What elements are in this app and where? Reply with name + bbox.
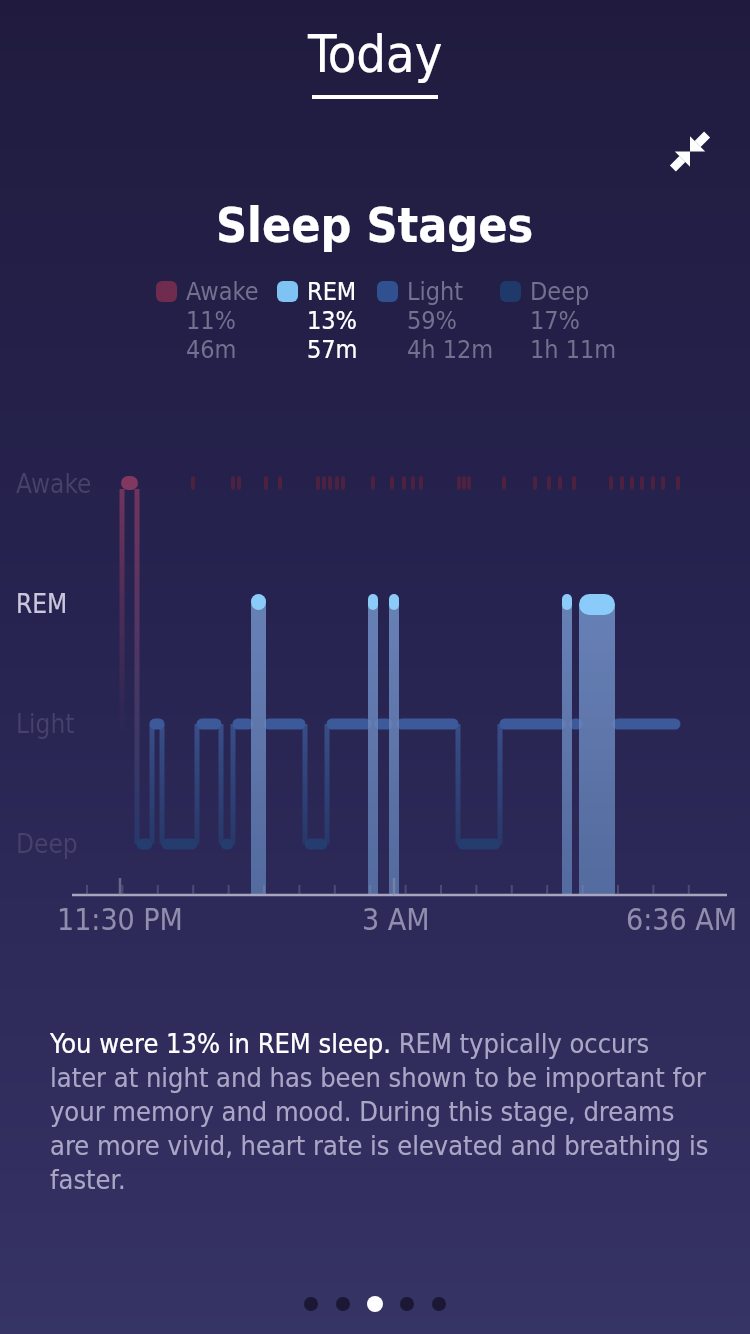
staticText: 4h 12m [407,335,494,364]
button[interactable] [295,1295,327,1313]
staticText: REM [307,277,357,306]
button[interactable] [327,1295,359,1313]
button[interactable]: Deep [500,277,617,364]
staticText: 13% [307,306,357,335]
staticText: You were 13% in REM sleep. REM typically… [50,1028,709,1195]
staticText: Deep [530,277,590,306]
staticText: 57m [307,335,358,364]
staticText: Light [16,709,75,739]
button[interactable] [359,1295,391,1313]
staticText: 11% [186,306,236,335]
button[interactable] [423,1295,455,1313]
button[interactable] [660,121,720,181]
staticText: 17% [530,306,580,335]
button[interactable]: REM [277,277,358,364]
staticText: Deep [16,829,78,859]
button[interactable]: Today [0,24,750,85]
staticText: 1h 11m [530,335,617,364]
staticText: 59% [407,306,457,335]
staticText: Sleep Stages [216,197,534,253]
staticText: Today [308,24,443,85]
staticText: 46m [186,335,237,364]
staticText: REM [16,589,68,619]
button[interactable] [391,1295,423,1313]
staticText: Awake [186,277,259,306]
staticText: 3 AM [362,902,430,937]
staticText: Light [407,277,464,306]
staticText: 6:36 AM [626,902,737,937]
staticText: 11:30 PM [57,902,183,937]
staticText: Awake [16,469,92,499]
button[interactable]: Awake [156,277,259,364]
button[interactable]: Light [377,277,494,364]
